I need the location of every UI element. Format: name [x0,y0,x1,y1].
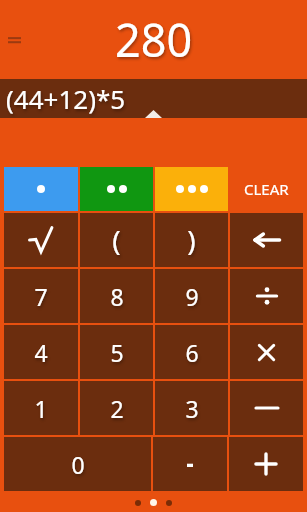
button[interactable]: ) [155,213,228,267]
staticText: 2 [110,393,124,424]
button[interactable]: Minus [230,381,303,435]
staticText: 3 [185,393,199,424]
button[interactable]: Square root [4,213,78,267]
button[interactable]: 0 [4,437,151,491]
staticText: 6 [185,337,199,368]
button[interactable]: Backspace [230,213,303,267]
button[interactable]: 9 [155,269,228,323]
button[interactable]: 280 [0,0,307,79]
staticText: ) [187,221,196,259]
button[interactable]: Decimal point [153,437,227,491]
button[interactable]: 1 [4,381,78,435]
staticText: 0 [71,449,85,480]
button[interactable]: ( [80,213,153,267]
button[interactable]: CLEAR [230,167,303,211]
button[interactable]: 6 [155,325,228,379]
button[interactable]: Plus [229,437,303,491]
button[interactable]: 4 [4,325,78,379]
staticText: ( [112,221,121,259]
staticText: 1 [34,393,48,424]
staticText: 9 [185,281,199,312]
staticText: 280 [115,9,193,70]
staticText: 8 [110,281,124,312]
button[interactable]: 8 [80,269,153,323]
staticText: 7 [34,281,48,312]
button[interactable]: 2 [80,381,153,435]
staticText: CLEAR [244,179,289,199]
button[interactable]: Memory slot 2 [80,167,153,211]
button[interactable]: 5 [80,325,153,379]
button[interactable]: 3 [155,381,228,435]
staticText: 4 [34,337,48,368]
button[interactable]: Multiply [230,325,303,379]
button[interactable]: Memory slot 3 [155,167,228,211]
button[interactable]: Divide [230,269,303,323]
button[interactable]: Memory slot 1 [4,167,78,211]
button[interactable]: (44+12)*5 [0,79,307,118]
staticText: 5 [110,337,124,368]
button[interactable]: 7 [4,269,78,323]
staticText: (44+12)*5 [6,81,126,116]
